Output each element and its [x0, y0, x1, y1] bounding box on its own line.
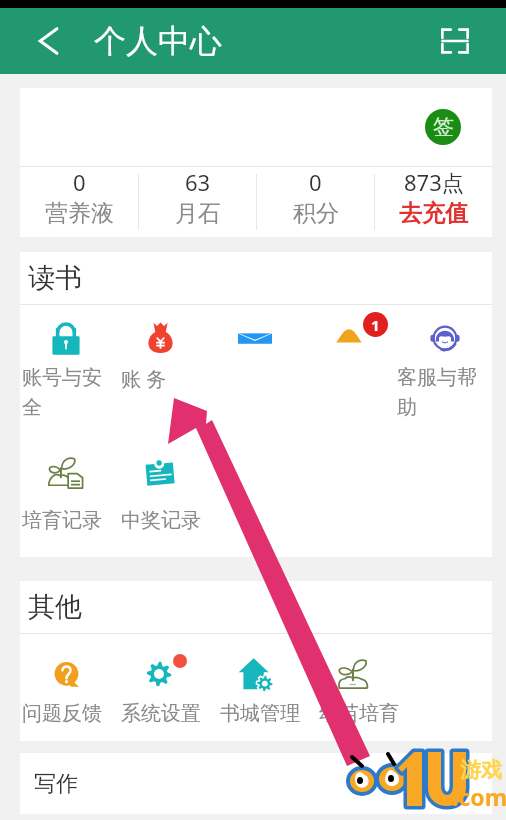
button[interactable]	[40, 313, 92, 365]
button[interactable]	[40, 648, 93, 701]
button[interactable]: 63	[139, 167, 256, 228]
staticText: 0	[309, 167, 322, 197]
staticText: 月石	[175, 199, 221, 228]
staticText: 客服与帮助	[397, 365, 491, 420]
staticText: 账 务	[121, 365, 218, 392]
button[interactable]	[326, 314, 372, 360]
button[interactable]: 0	[257, 167, 374, 228]
staticText: 读书	[28, 261, 82, 295]
staticText: 幼苗培育	[319, 701, 416, 726]
staticText: 63	[185, 167, 211, 197]
staticText: 书城管理	[220, 701, 317, 726]
button[interactable]: Back	[34, 27, 62, 55]
staticText: 1	[371, 315, 380, 335]
staticText: 积分	[293, 199, 339, 228]
staticText: 问题反馈	[22, 701, 119, 726]
staticText: 中奖记录	[121, 508, 218, 533]
button[interactable]	[135, 312, 186, 363]
staticText: 营养液	[45, 199, 114, 228]
staticText: 个人中心	[94, 21, 222, 61]
button[interactable]: 0	[20, 167, 138, 228]
button[interactable]	[419, 312, 471, 364]
staticText: 873点	[404, 167, 464, 197]
button[interactable]	[229, 648, 281, 700]
staticText: 账号与安全	[22, 365, 119, 420]
staticText: 0	[73, 167, 86, 197]
button[interactable]: Scan	[440, 26, 470, 56]
button[interactable]	[39, 446, 93, 500]
button[interactable]	[133, 446, 187, 500]
staticText: 其他	[28, 590, 82, 624]
button[interactable]	[134, 649, 184, 699]
staticText: .com	[452, 781, 506, 812]
button[interactable]	[229, 313, 281, 365]
button[interactable]	[326, 646, 380, 700]
button[interactable]: 签	[425, 109, 461, 145]
staticText: 签	[433, 114, 454, 140]
staticText: 去充值	[399, 199, 468, 228]
staticText: 培育记录	[22, 508, 119, 533]
staticText: 写作	[34, 770, 78, 798]
staticText: 系统设置	[121, 701, 218, 726]
button[interactable]: 写作	[20, 753, 492, 814]
staticText: 游戏	[460, 757, 502, 783]
button[interactable]: 873点	[375, 167, 492, 228]
